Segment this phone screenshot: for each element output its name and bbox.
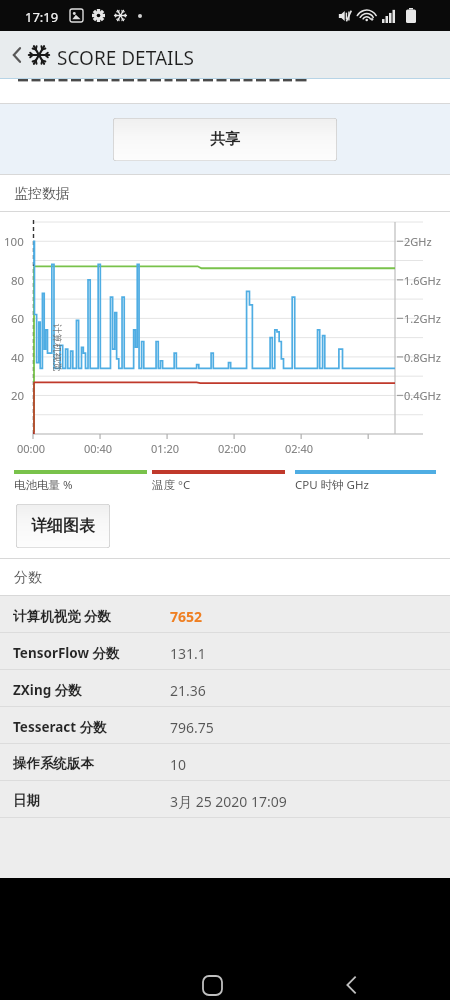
button[interactable]: Back [4, 31, 30, 78]
staticText: 17:19 [25, 8, 59, 26]
staticText: 02:00 [218, 441, 247, 456]
button[interactable]: Back [338, 972, 364, 998]
staticText: 电池电量 % [14, 477, 73, 493]
staticText: 计算机视觉 分数 [13, 607, 112, 625]
staticText: 7652 [170, 607, 203, 626]
staticText: 计算机视觉 [51, 324, 63, 372]
staticText: 操作系统版本 [13, 755, 94, 772]
staticText: 0.4GHz [404, 388, 441, 403]
staticText: CPU 时钟 GHz [295, 477, 369, 493]
staticText: 80 [11, 273, 25, 289]
button[interactable]: 日期 [0, 781, 450, 818]
staticText: 共享 [210, 130, 240, 149]
staticText: 详细图表 [31, 516, 95, 536]
staticText: 20 [11, 388, 25, 404]
staticText: 131.1 [170, 644, 206, 663]
staticText: 1.2GHz [404, 311, 441, 326]
staticText: 60 [11, 311, 25, 327]
staticText: 10 [170, 755, 187, 774]
button[interactable]: Tesseract 分数 [0, 707, 450, 744]
staticText: 100 [4, 234, 24, 250]
staticText: SCORE DETAILS [57, 45, 194, 71]
staticText: 1.6GHz [404, 273, 441, 288]
staticText: 0.8GHz [404, 350, 441, 365]
button[interactable]: 共享 [113, 118, 337, 161]
button[interactable]: ZXing 分数 [0, 670, 450, 707]
button[interactable]: Home [199, 972, 225, 998]
staticText: 01:20 [151, 441, 180, 456]
button[interactable]: TensorFlow 分数 [0, 633, 450, 670]
staticText: 监控数据 [14, 185, 70, 203]
staticText: 日期 [13, 792, 40, 809]
button[interactable]: 操作系统版本 [0, 744, 450, 781]
staticText: 00:40 [84, 441, 113, 456]
button[interactable]: 详细图表 [16, 504, 110, 548]
staticText: 3月 25 2020 17:09 [170, 792, 287, 811]
staticText: 796.75 [170, 718, 214, 737]
staticText: ZXing 分数 [13, 681, 82, 699]
staticText: 02:40 [285, 441, 314, 456]
staticText: 40 [11, 350, 25, 366]
button[interactable]: 计算机视觉 分数 [0, 596, 450, 633]
staticText: 00:00 [17, 441, 46, 456]
staticText: 2GHz [404, 234, 432, 249]
staticText: TensorFlow 分数 [13, 644, 120, 662]
staticText: 21.36 [170, 681, 206, 700]
staticText: Tesseract 分数 [13, 718, 107, 736]
staticText: 分数 [14, 569, 42, 587]
staticText: 温度 °C [152, 477, 191, 493]
